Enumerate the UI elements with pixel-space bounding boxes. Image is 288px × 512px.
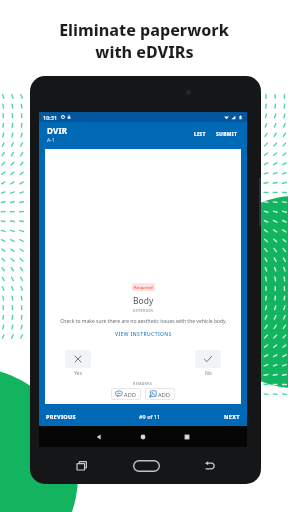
button[interactable]: Back (92, 430, 106, 444)
button[interactable]: Yes (65, 350, 91, 377)
staticText: 10:31 (43, 114, 58, 121)
staticText: ADD (158, 391, 171, 398)
staticText: SUBMIT (216, 131, 238, 138)
staticText: No (205, 370, 212, 377)
staticText: Yes (74, 370, 82, 377)
staticText: EXTERIOR (133, 308, 154, 313)
button[interactable]: Back (199, 455, 221, 477)
button[interactable]: Home (136, 430, 150, 444)
staticText: Body (133, 295, 154, 307)
button[interactable]: PREVIOUS (39, 409, 83, 424)
button[interactable]: LIST (190, 127, 210, 142)
button[interactable]: Home (129, 449, 163, 483)
button[interactable]: ADD (111, 388, 141, 400)
staticText: ADD (124, 391, 137, 398)
staticText: REMARKS (133, 381, 153, 386)
staticText: Check to make sure there are no aestheti… (60, 318, 227, 325)
staticText: DVIR (47, 125, 68, 136)
button[interactable]: Recents (71, 455, 93, 477)
staticText: with eDVIRs (95, 41, 194, 63)
button[interactable]: VIEW INSTRUCTIONS (112, 329, 175, 340)
staticText: Required (134, 284, 153, 290)
button[interactable]: No (195, 350, 221, 377)
staticText: NEXT (224, 413, 240, 420)
staticText: LIST (194, 131, 206, 138)
staticText: Eliminate paperwork (59, 19, 229, 41)
staticText: PREVIOUS (46, 413, 76, 420)
button[interactable]: SUBMIT (212, 127, 242, 142)
staticText: #9 of 11 (139, 413, 161, 420)
button[interactable]: NEXT (217, 409, 247, 424)
button[interactable]: ADD (145, 388, 175, 400)
staticText: A-1 (47, 137, 55, 144)
button[interactable]: Recents (180, 430, 194, 444)
staticText: VIEW INSTRUCTIONS (115, 331, 172, 338)
